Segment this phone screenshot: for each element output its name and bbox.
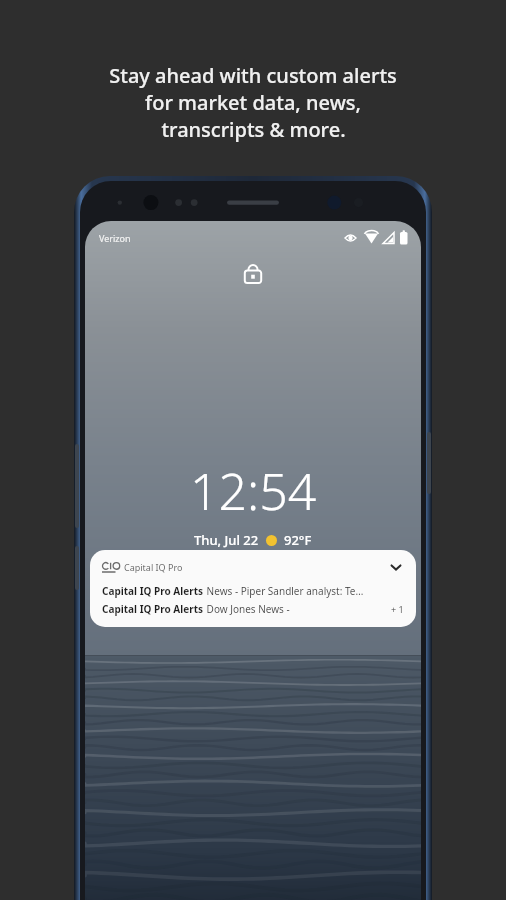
- staticText: Capital IQ Pro Alerts: [102, 602, 204, 616]
- staticText: News - Piper Sandler analyst: Te…: [204, 584, 364, 598]
- other: Locked: [243, 261, 263, 285]
- button[interactable]: Capital IQ Pro: [90, 550, 416, 627]
- staticText: Verizon: [99, 232, 131, 244]
- staticText: 92°F: [284, 531, 312, 549]
- staticText: 12:54: [190, 457, 317, 525]
- staticText: for market data, news,: [145, 89, 361, 116]
- button[interactable]: Expand notification: [388, 559, 404, 575]
- staticText: + 1: [391, 603, 404, 615]
- staticText: Dow Jones News - Old Seco…: [204, 602, 297, 616]
- staticText: Thu, Jul 22: [194, 531, 259, 549]
- staticText: Stay ahead with custom alerts: [109, 62, 397, 89]
- staticText: Capital IQ Pro: [124, 561, 183, 573]
- staticText: transcripts & more.: [161, 116, 346, 143]
- staticText: Capital IQ Pro Alerts: [102, 584, 204, 598]
